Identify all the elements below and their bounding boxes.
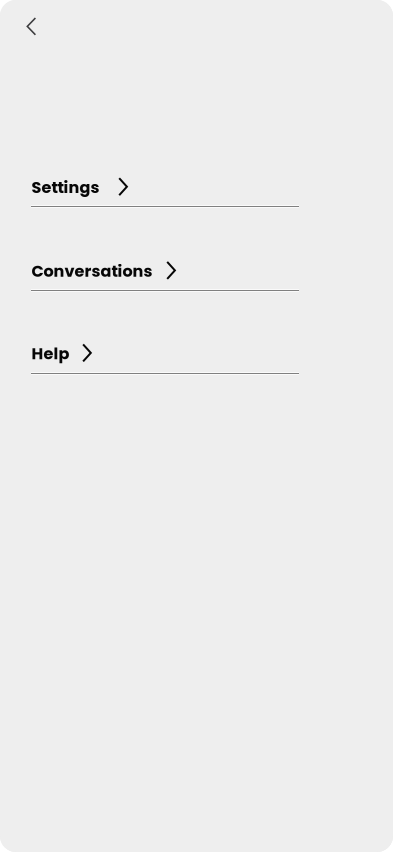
button[interactable]: Conversations [31,256,300,296]
staticText: Settings [31,176,99,199]
staticText: Conversations [31,260,152,282]
button[interactable]: Settings [31,172,300,212]
button[interactable]: Back [0,0,52,50]
staticText: Help [31,342,69,365]
button[interactable]: Help [31,339,300,379]
